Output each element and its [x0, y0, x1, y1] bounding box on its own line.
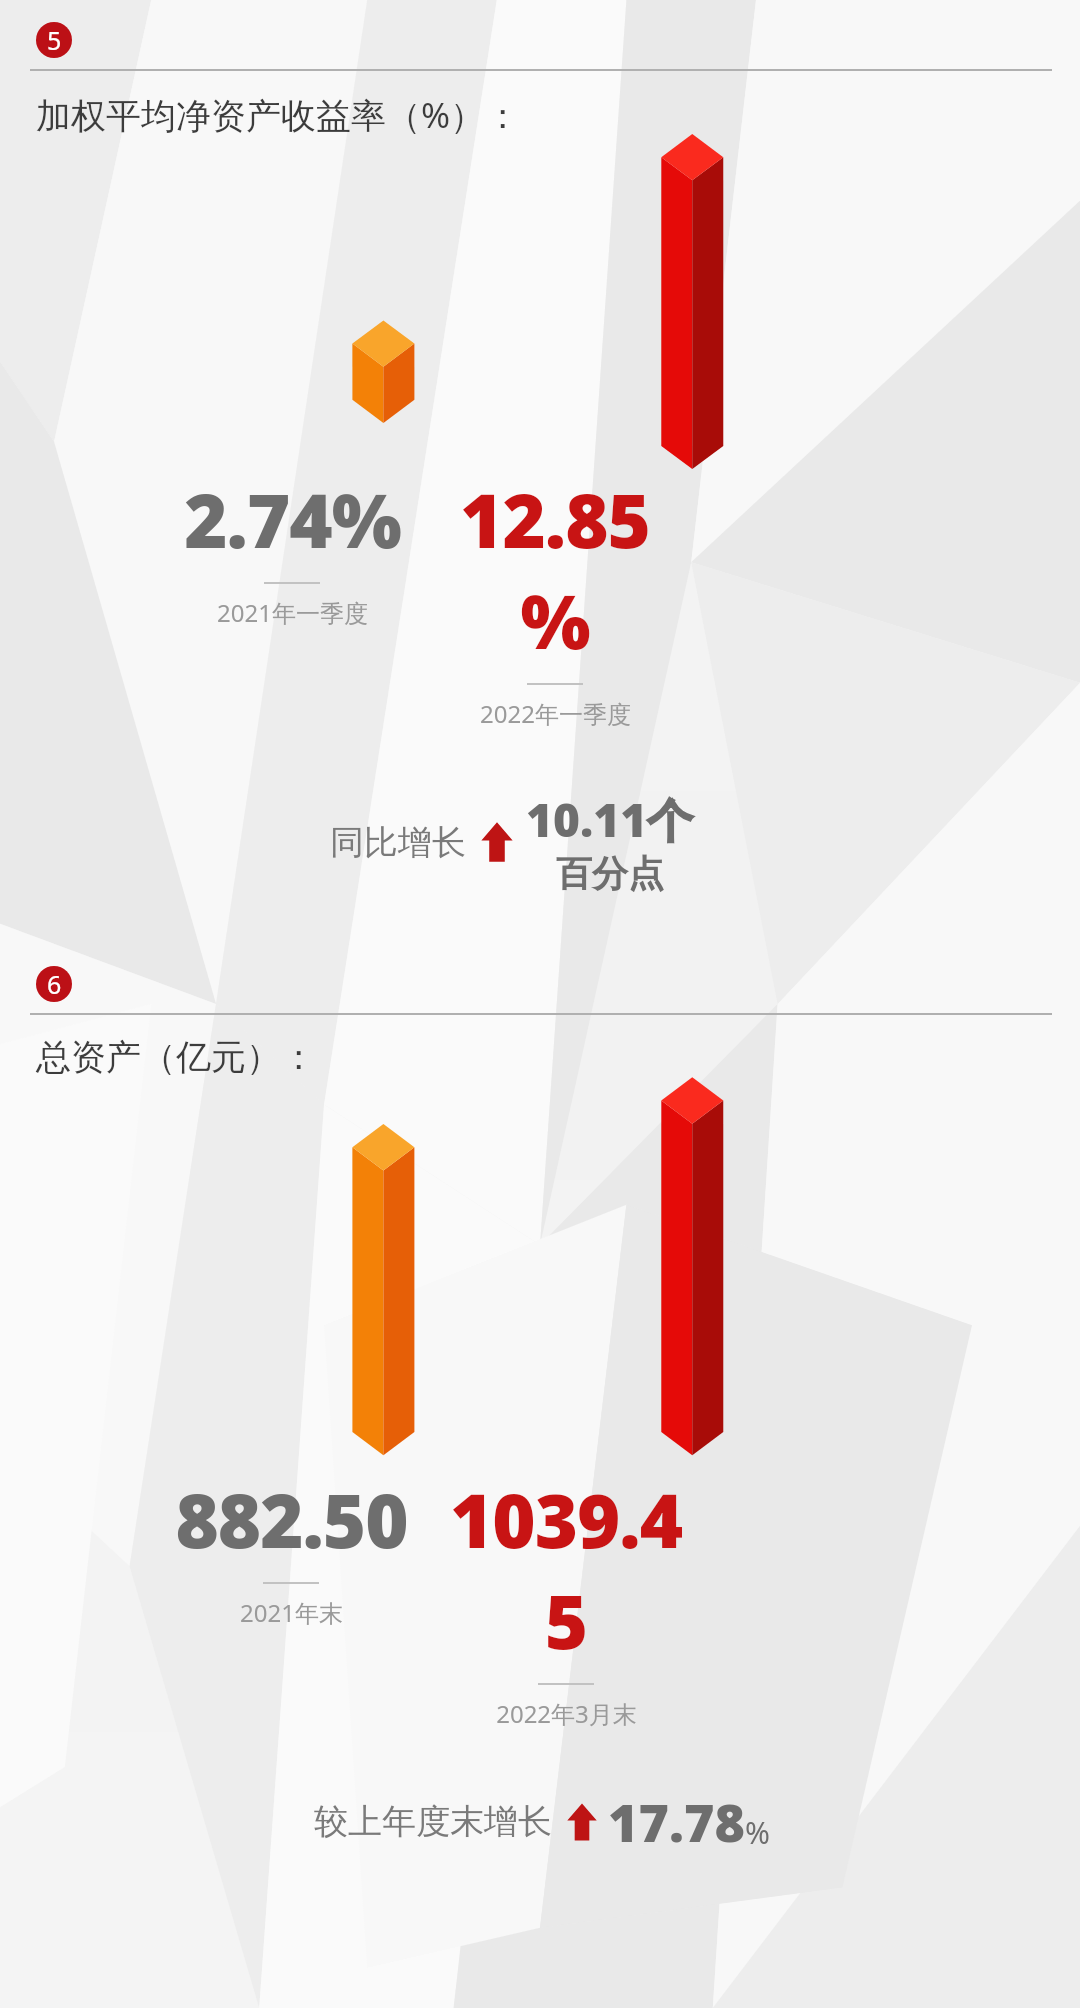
staticText: 百分点: [556, 851, 664, 896]
button[interactable]: 较上年度末增长: [314, 1786, 1080, 1857]
staticText: 10.11个: [526, 788, 694, 851]
staticText: %: [745, 1812, 770, 1853]
staticText: 882.50: [175, 1469, 408, 1570]
staticText: 2021年一季度: [217, 596, 368, 629]
button[interactable]: 6: [36, 966, 72, 1002]
staticText: 2022年3月末: [496, 1697, 637, 1730]
staticText: 6: [47, 967, 62, 1001]
staticText: 2021年末: [240, 1596, 343, 1629]
staticText: 总资产（亿元）：: [36, 1035, 316, 1079]
staticText: 2022年一季度: [480, 697, 631, 730]
staticText: 5: [47, 23, 62, 57]
staticText: 12.85%: [430, 469, 680, 671]
other: 增长: [566, 1800, 598, 1844]
other: 增长: [480, 818, 514, 866]
staticText: 1039.45: [430, 1469, 702, 1671]
staticText: 同比增长: [330, 821, 466, 864]
staticText: 加权平均净资产收益率（%）：: [36, 91, 521, 139]
staticText: 17.78: [608, 1786, 745, 1857]
staticText: 较上年度末增长: [314, 1800, 552, 1843]
button[interactable]: 同比增长: [330, 788, 1080, 896]
button[interactable]: 5: [36, 22, 72, 58]
staticText: 2.74%: [184, 469, 401, 570]
